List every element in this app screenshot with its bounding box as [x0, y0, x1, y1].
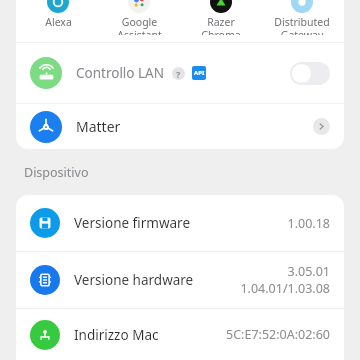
button[interactable]: Indirizzo Mac: [16, 309, 344, 360]
button[interactable]: Matter: [16, 104, 344, 149]
staticText: Versione hardware: [74, 271, 194, 289]
button[interactable]: Versione firmware: [16, 195, 344, 251]
staticText: Indirizzo Mac: [74, 326, 159, 344]
staticText: Controllo LAN: [76, 64, 164, 82]
staticText: Distributed Gateway: [274, 15, 330, 35]
staticText: Google Assistant: [117, 15, 162, 35]
button[interactable]: Versione hardware: [16, 252, 344, 308]
button[interactable]: Aiuto: [172, 67, 185, 80]
button[interactable]: Distributed Gateway: [263, 0, 341, 42]
staticText: 3.05.01: [287, 263, 330, 280]
button[interactable]: Controllo LAN: [16, 43, 344, 103]
button[interactable]: Attiva Controllo LAN: [290, 62, 330, 85]
staticText: API: [194, 69, 205, 77]
staticText: Matter: [76, 117, 121, 136]
button[interactable]: Alexa: [19, 0, 97, 36]
staticText: Razer Chroma: [201, 15, 241, 35]
button[interactable]: Razer Chroma: [182, 0, 260, 42]
staticText: Versione firmware: [74, 214, 191, 232]
staticText: Alexa: [45, 15, 72, 29]
button[interactable]: Google Assistant: [100, 0, 178, 42]
staticText: 1.04.01/1.03.08: [240, 280, 330, 297]
staticText: 5C:E7:52:0A:02:60: [226, 326, 330, 343]
staticText: 1.00.18: [287, 215, 330, 232]
button[interactable]: API: [192, 66, 206, 80]
staticText: Dispositivo: [24, 164, 89, 181]
staticText: ?: [176, 68, 181, 80]
